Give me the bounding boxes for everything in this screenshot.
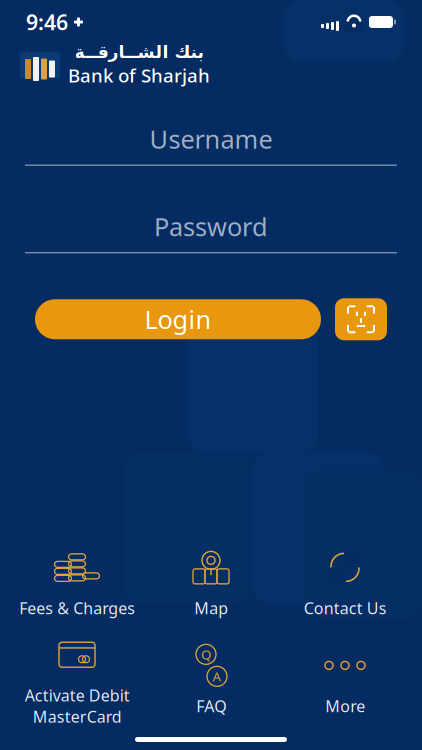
button[interactable]: Sign in with Face ID <box>335 298 387 340</box>
staticText: More <box>325 695 365 717</box>
staticText: 9:46 <box>26 8 68 36</box>
button[interactable]: Contact Us <box>278 545 412 621</box>
button[interactable]: Map <box>144 545 278 621</box>
staticText: Q <box>201 645 211 663</box>
staticText: Username <box>149 122 272 156</box>
staticText: Map <box>194 597 228 619</box>
staticText: A <box>212 667 221 685</box>
staticText: Password <box>154 210 268 243</box>
staticText: Activate Debit MasterCard <box>24 685 129 727</box>
button[interactable]: Login <box>35 299 321 339</box>
staticText: FAQ <box>196 695 226 717</box>
button[interactable]: Fees & Charges <box>10 545 144 621</box>
button[interactable]: Password <box>0 210 422 253</box>
button[interactable]: Username <box>0 122 422 166</box>
staticText: Login <box>144 302 211 336</box>
staticText: Contact Us <box>303 597 386 619</box>
button[interactable]: More <box>278 643 412 719</box>
staticText: بنك الشــارقــة <box>74 42 204 62</box>
staticText: Bank of Sharjah <box>68 63 210 88</box>
staticText: Fees & Charges <box>19 597 135 619</box>
button[interactable]: Q <box>144 643 278 719</box>
button[interactable]: Activate Debit MasterCard <box>10 643 144 719</box>
